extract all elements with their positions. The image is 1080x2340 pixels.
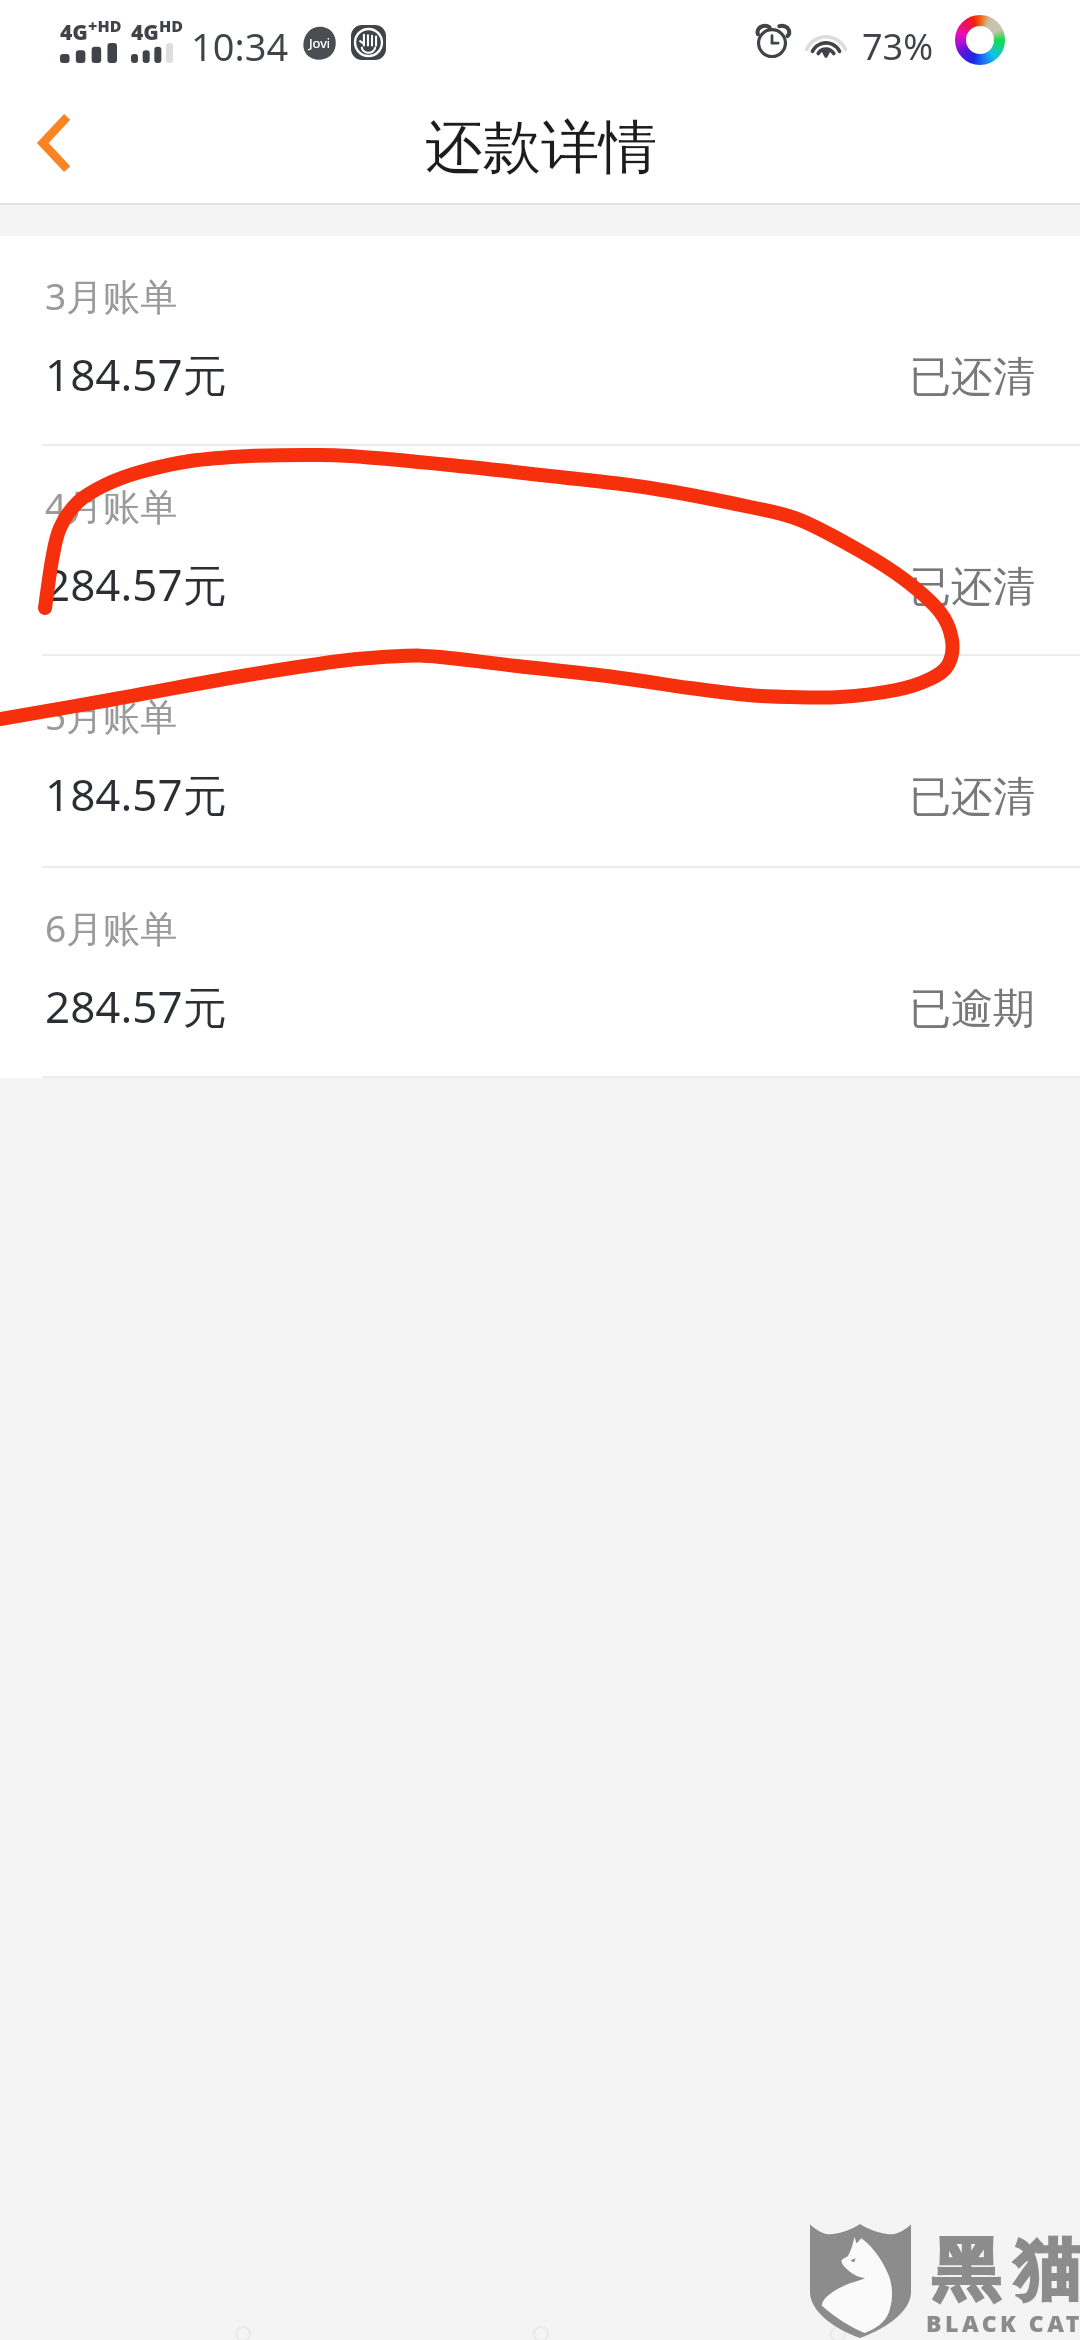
staticText: BLACK CAT	[926, 2307, 1080, 2338]
staticText: 已还清	[909, 561, 1035, 614]
staticText: 5月账单	[45, 690, 178, 741]
staticText: 已还清	[909, 351, 1035, 404]
button[interactable]: Back	[0, 100, 108, 205]
button[interactable]: 3月账单	[0, 236, 1080, 446]
staticText: 284.57元	[45, 554, 227, 614]
staticText: +HD	[88, 15, 122, 37]
staticText: 10:34	[191, 20, 289, 72]
staticText: Jovi	[309, 34, 331, 52]
staticText: 黑猫	[925, 2228, 1080, 2314]
button[interactable]: 5月账单	[0, 656, 1080, 868]
staticText: 73%	[862, 22, 934, 71]
staticText: HD	[159, 15, 184, 37]
staticText: 184.57元	[45, 344, 227, 404]
staticText: 已逾期	[909, 983, 1035, 1036]
staticText: 还款详情	[425, 111, 657, 184]
staticText: 4G	[60, 18, 88, 47]
staticText: 3月账单	[45, 270, 178, 321]
staticText: 6月账单	[45, 902, 178, 953]
button[interactable]: 6月账单	[0, 868, 1080, 1078]
staticText: 184.57元	[45, 764, 227, 824]
staticText: 4月账单	[45, 480, 178, 531]
button[interactable]: 4月账单	[0, 446, 1080, 656]
staticText: 4G	[131, 18, 159, 47]
staticText: 284.57元	[45, 976, 227, 1036]
staticText: 已还清	[909, 771, 1035, 824]
